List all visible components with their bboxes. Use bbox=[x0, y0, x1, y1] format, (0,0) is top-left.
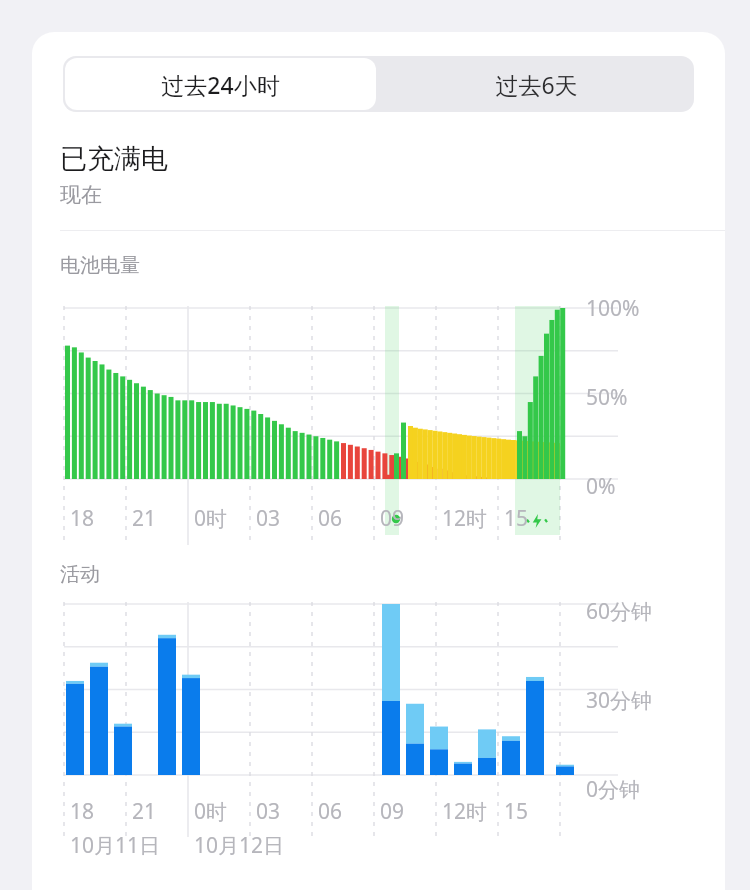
staticText: 03 bbox=[256, 797, 281, 826]
staticText: 09 bbox=[380, 504, 405, 533]
staticText: 12时 bbox=[442, 797, 488, 826]
button[interactable]: 过去24小时 bbox=[65, 58, 376, 110]
staticText: 0时 bbox=[194, 797, 228, 826]
staticText: 过去6天 bbox=[495, 69, 578, 100]
staticText: 电池电量 bbox=[60, 253, 140, 278]
staticText: 已充满电 bbox=[60, 142, 168, 176]
staticText: 100% bbox=[586, 294, 640, 323]
button[interactable]: 过去6天 bbox=[378, 56, 694, 112]
staticText: 0分钟 bbox=[586, 775, 641, 804]
staticText: 活动 bbox=[60, 562, 100, 587]
staticText: 50% bbox=[586, 383, 628, 412]
staticText: 10月11日 bbox=[70, 831, 161, 860]
staticText: 15 bbox=[504, 797, 529, 826]
staticText: 60分钟 bbox=[586, 597, 653, 626]
staticText: 0时 bbox=[194, 504, 228, 533]
staticText: 0% bbox=[586, 472, 616, 501]
staticText: 06 bbox=[318, 797, 343, 826]
staticText: 10月12日 bbox=[194, 831, 285, 860]
staticText: 06 bbox=[318, 504, 343, 533]
staticText: 过去24小时 bbox=[161, 69, 280, 100]
staticText: 现在 bbox=[60, 182, 102, 208]
staticText: 12时 bbox=[442, 504, 488, 533]
staticText: 21 bbox=[132, 797, 157, 826]
staticText: 18 bbox=[70, 797, 95, 826]
staticText: 30分钟 bbox=[586, 686, 653, 715]
staticText: 21 bbox=[132, 504, 157, 533]
staticText: 15 bbox=[504, 504, 529, 533]
staticText: 09 bbox=[380, 797, 405, 826]
staticText: 03 bbox=[256, 504, 281, 533]
staticText: 18 bbox=[70, 504, 95, 533]
